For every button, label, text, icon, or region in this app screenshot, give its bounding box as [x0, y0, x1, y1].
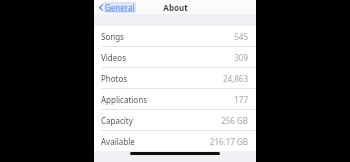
button[interactable]: Capacity — [94, 110, 256, 130]
staticText: 177 — [234, 94, 248, 105]
staticText: About — [163, 2, 188, 13]
button[interactable]: Songs — [94, 26, 256, 46]
button[interactable]: Available — [94, 131, 256, 151]
staticText: Videos — [101, 52, 126, 63]
staticText: 309 — [234, 52, 248, 63]
staticText: Applications — [101, 94, 147, 105]
staticText: Capacity — [101, 115, 133, 126]
staticText: Available — [101, 136, 135, 147]
staticText: 256 GB — [221, 115, 248, 126]
staticText: Photos — [101, 73, 128, 84]
staticText: General — [105, 2, 135, 13]
button[interactable]: General — [97, 1, 137, 14]
staticText: 216.17 GB — [209, 136, 248, 147]
button[interactable]: Photos — [94, 68, 256, 88]
staticText: 24,863 — [222, 73, 248, 84]
button[interactable]: Applications — [94, 89, 256, 109]
staticText: 545 — [234, 31, 248, 42]
button[interactable]: Videos — [94, 47, 256, 67]
staticText: Songs — [101, 31, 124, 42]
